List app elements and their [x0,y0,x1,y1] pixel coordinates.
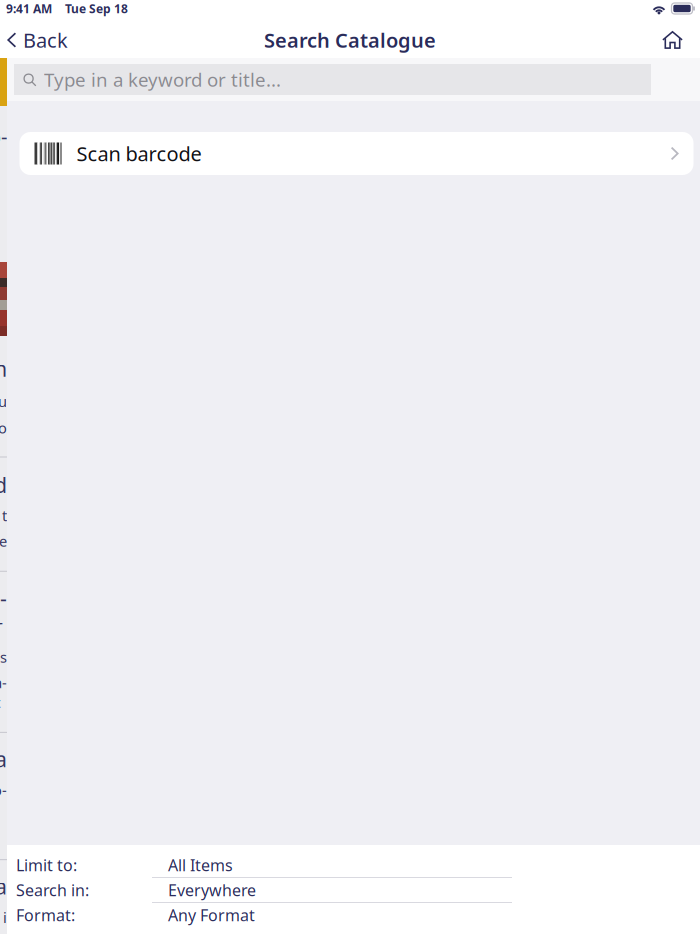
button[interactable]: Scan barcode [19,132,693,175]
staticText: e [0,531,7,551]
button[interactable]: Type in a keyword or title... [14,64,651,95]
staticText: ir [0,584,7,640]
staticText: az [0,673,7,712]
staticText: Type in a keyword or title... [44,67,281,92]
staticText: n [0,354,7,382]
button[interactable]: Home [640,22,700,58]
staticText: i [3,907,7,927]
button[interactable]: Limit to: [7,853,700,878]
staticText: Back [23,27,68,53]
button[interactable]: Format: [7,903,700,928]
staticText: Scan barcode [76,140,201,167]
staticText: Tue Sep 18 [65,0,128,16]
staticText: Search Catalogue [264,27,436,53]
staticText: a [0,745,7,773]
staticText: a [0,872,7,900]
staticText: or [0,123,7,176]
staticText: Everywhere [168,879,256,901]
staticText: u [0,391,7,411]
button[interactable]: Back [0,22,110,58]
staticText: Limit to: [16,854,77,876]
staticText: or [0,780,7,819]
staticText: All Items [168,854,233,876]
staticText: o [0,418,7,437]
staticText: t [2,506,7,525]
staticText: Search in: [16,879,89,901]
staticText: s [0,647,7,667]
staticText: 9:41 AM [6,0,52,16]
staticText: Any Format [168,904,255,926]
button[interactable]: Search in: [7,878,700,903]
staticText: d [0,470,7,499]
staticText: Format: [16,904,75,926]
